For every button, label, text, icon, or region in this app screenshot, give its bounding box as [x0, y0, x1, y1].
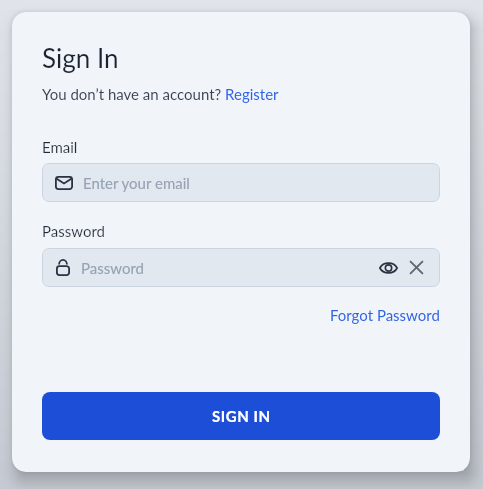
- button[interactable]: Password: [42, 248, 440, 287]
- button[interactable]: Forgot Password: [330, 306, 440, 324]
- staticText: Password: [81, 259, 144, 277]
- button[interactable]: SIGN IN: [42, 392, 440, 440]
- button[interactable]: [379, 261, 398, 275]
- staticText: Enter your email: [83, 174, 190, 192]
- button[interactable]: You don’t have an account? Register: [42, 85, 279, 103]
- staticText: Email: [42, 138, 78, 156]
- button[interactable]: [410, 261, 423, 274]
- staticText: Sign In: [42, 42, 119, 73]
- button[interactable]: Enter your email: [42, 163, 440, 202]
- staticText: SIGN IN: [212, 407, 271, 425]
- staticText: Password: [42, 222, 105, 240]
